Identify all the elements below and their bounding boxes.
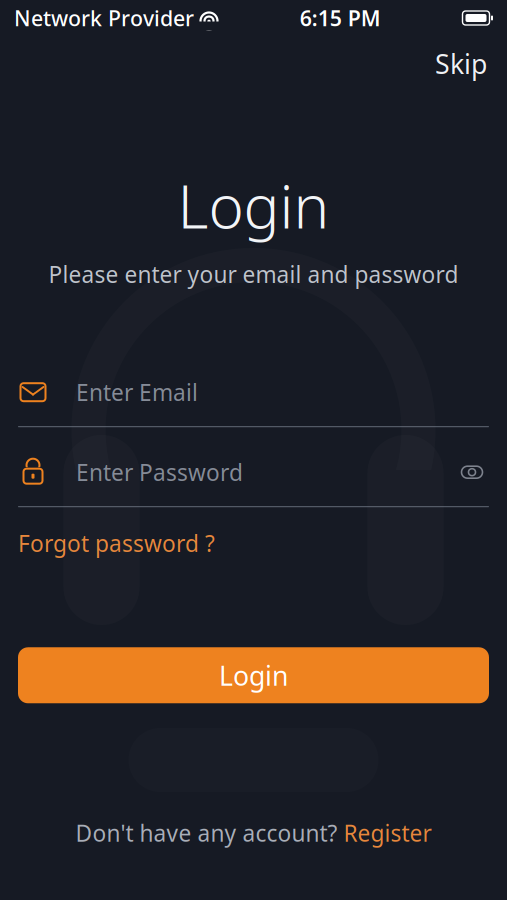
staticText: Register xyxy=(343,818,431,848)
staticText: Login xyxy=(219,658,288,693)
staticText: Forgot password ? xyxy=(18,528,215,558)
staticText: Please enter your email and password xyxy=(48,259,458,289)
staticText: Network Provider xyxy=(14,4,194,32)
staticText: 6:15 PM xyxy=(300,4,381,32)
staticText: Skip xyxy=(435,46,487,81)
button[interactable]: Show password xyxy=(455,457,489,487)
button[interactable]: Login xyxy=(18,647,489,703)
button[interactable]: Forgot password ? xyxy=(18,523,215,563)
button[interactable]: Skip xyxy=(427,40,495,87)
staticText: Login xyxy=(177,165,329,245)
button[interactable]: Don't have any account? xyxy=(65,812,441,854)
staticText: Enter Password xyxy=(76,457,243,487)
staticText: Don't have any account? xyxy=(75,818,337,848)
staticText: Enter Email xyxy=(76,377,198,407)
